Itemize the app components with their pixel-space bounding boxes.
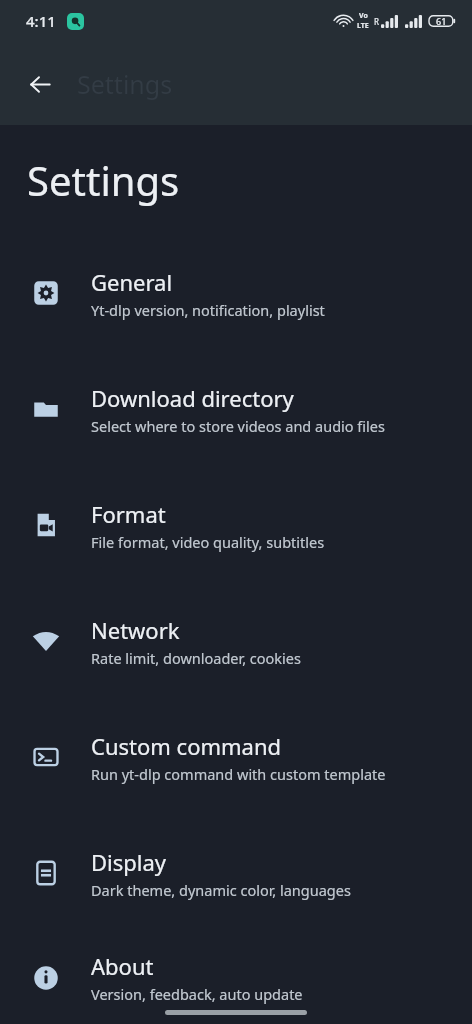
staticText: Display <box>91 847 167 877</box>
staticText: 61 <box>436 15 447 27</box>
button[interactable]: Display <box>0 815 472 931</box>
staticText: File format, video quality, subtitles <box>91 532 325 552</box>
staticText: Yt-dlp version, notification, playlist <box>91 300 325 320</box>
staticText: Settings <box>27 153 180 207</box>
staticText: Settings <box>77 67 173 101</box>
button[interactable]: About <box>0 931 472 1024</box>
staticText: Dark theme, dynamic color, languages <box>91 880 351 900</box>
button[interactable]: Custom command <box>0 699 472 815</box>
staticText: LTE <box>357 21 369 31</box>
staticText: Rate limit, downloader, cookies <box>91 648 301 668</box>
staticText: Version, feedback, auto update <box>91 984 303 1004</box>
button[interactable]: General <box>0 235 472 351</box>
staticText: General <box>91 267 173 297</box>
staticText: Vo <box>359 11 368 21</box>
staticText: Format <box>91 499 166 529</box>
button[interactable]: Format <box>0 467 472 583</box>
staticText: Select where to store videos and audio f… <box>91 416 385 436</box>
staticText: Custom command <box>91 731 282 761</box>
staticText: R <box>374 16 379 27</box>
staticText: Network <box>91 615 180 645</box>
button[interactable]: Download directory <box>0 351 472 467</box>
button[interactable]: Back <box>16 60 64 108</box>
staticText: 4:11 <box>26 11 56 31</box>
staticText: About <box>91 951 154 981</box>
button[interactable]: Network <box>0 583 472 699</box>
staticText: Run yt-dlp command with custom template <box>91 764 386 784</box>
staticText: Download directory <box>91 383 294 413</box>
